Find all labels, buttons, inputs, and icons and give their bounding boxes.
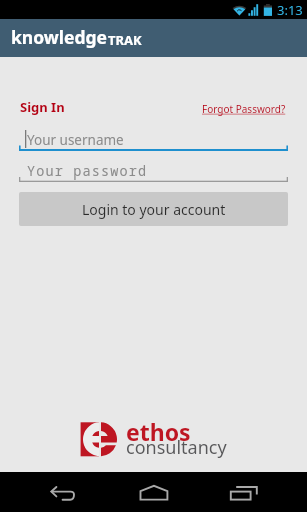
staticText: Sign In [20, 98, 65, 116]
staticText: 3:13 [277, 1, 303, 19]
button[interactable]: Your password [19, 160, 288, 182]
staticText: Forgot Password? [202, 102, 286, 116]
staticText: ethos [126, 416, 191, 447]
button[interactable]: Forgot Password? [202, 102, 286, 116]
button[interactable]: Home [124, 472, 184, 512]
button[interactable]: Login to your account [19, 192, 288, 226]
staticText: TRAK [108, 31, 142, 49]
staticText: Login to your account [82, 200, 226, 219]
button[interactable]: Recent apps [214, 472, 274, 512]
staticText: consultancy [126, 435, 227, 460]
staticText: knowledge [11, 25, 108, 49]
staticText: Your password [27, 162, 148, 180]
staticText: Your username [27, 131, 124, 149]
button[interactable]: Your username [19, 129, 288, 151]
button[interactable]: Back [34, 472, 94, 512]
